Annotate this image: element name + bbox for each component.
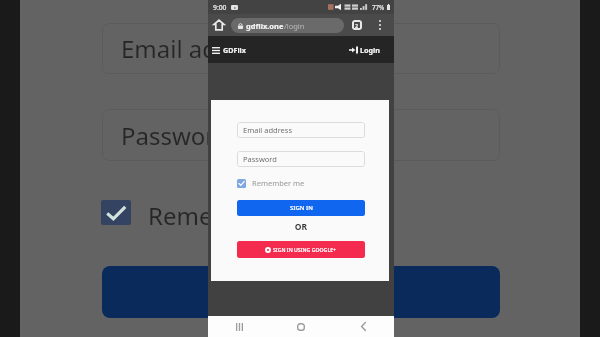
staticText: Email address — [243, 125, 293, 135]
button[interactable]: Home — [211, 17, 227, 33]
staticText: 77% — [372, 3, 385, 11]
button[interactable]: SIGN IN USING GOOGLE+ — [237, 241, 365, 258]
button[interactable]: Remember me — [237, 178, 305, 188]
staticText: 9:00 — [213, 3, 227, 12]
button[interactable]: SIGN IN — [237, 200, 365, 216]
button[interactable]: Back — [332, 316, 394, 337]
button[interactable]: Menu — [208, 42, 224, 58]
button[interactable]: Email address — [237, 122, 365, 138]
button[interactable] — [102, 266, 500, 318]
button[interactable]: Tabs — [349, 17, 365, 33]
staticText: Remember me — [148, 199, 316, 232]
staticText: GDFlix — [223, 45, 246, 55]
staticText: Password — [121, 119, 230, 152]
staticText: OR — [237, 221, 365, 233]
button[interactable]: Password — [102, 109, 500, 161]
staticText: SIGN IN — [290, 204, 313, 212]
button[interactable]: More options — [372, 17, 388, 33]
staticText: Login — [360, 45, 380, 55]
staticText: Remember me — [252, 178, 305, 188]
button[interactable]: Password — [237, 151, 365, 167]
staticText: 2 — [355, 22, 359, 29]
staticText: Password — [243, 154, 277, 164]
button[interactable]: gdflix.one — [238, 18, 344, 33]
button[interactable]: Home — [270, 316, 332, 337]
staticText: SIGN IN USING GOOGLE+ — [273, 246, 337, 253]
staticText: Email address — [121, 32, 278, 65]
staticText: /login — [284, 21, 305, 31]
button[interactable]: Remember me — [101, 200, 316, 233]
button[interactable]: Email address — [102, 23, 500, 74]
button[interactable]: Recent apps — [208, 316, 270, 337]
button[interactable]: Login — [349, 40, 380, 60]
staticText: gdflix.one — [246, 21, 284, 31]
